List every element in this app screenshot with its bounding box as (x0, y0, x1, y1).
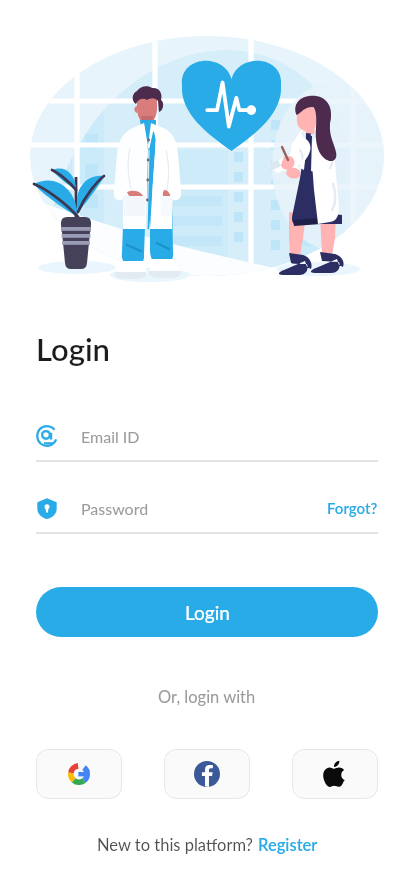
button[interactable]: Register (258, 835, 318, 855)
button[interactable]: Sign in with Google (36, 749, 122, 799)
staticText: Password (81, 499, 149, 518)
staticText: Forgot? (327, 499, 378, 517)
staticText: Register (258, 835, 318, 855)
button[interactable]: Sign in with Facebook (164, 749, 250, 799)
button[interactable]: Forgot? (327, 499, 378, 517)
staticText: Login (36, 330, 110, 367)
staticText: New to this platform? (97, 835, 258, 855)
staticText: Email ID (81, 427, 140, 446)
staticText: Login (185, 601, 230, 624)
staticText: Or, login with (158, 687, 256, 707)
button[interactable]: Sign in with Apple (292, 749, 378, 799)
button[interactable]: Login (36, 587, 378, 637)
